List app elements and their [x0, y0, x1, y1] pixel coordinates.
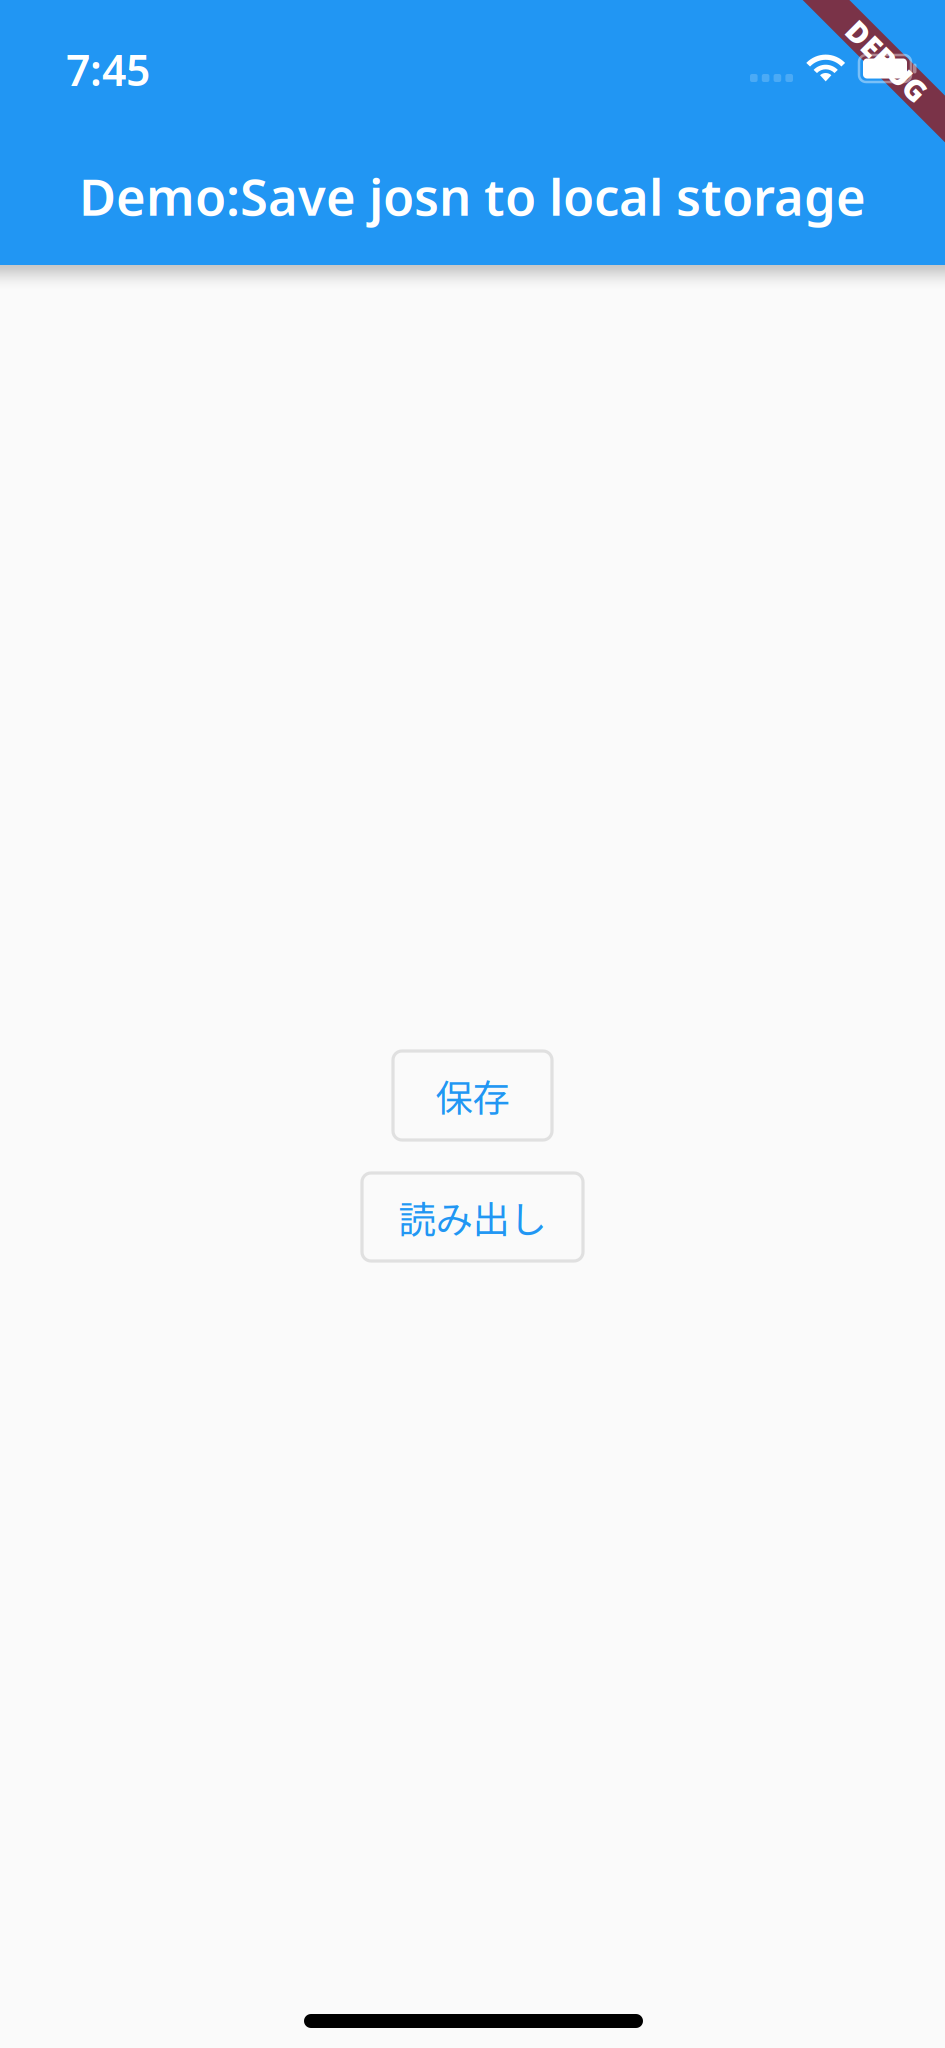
staticText: Demo:Save josn to local storage	[79, 162, 866, 230]
staticText: 7:45	[66, 41, 150, 98]
staticText: 保存	[435, 1068, 509, 1123]
button[interactable]: 読み出し	[362, 1173, 583, 1261]
staticText: 読み出し	[398, 1190, 546, 1244]
staticText: DEBUG	[836, 41, 938, 80]
button[interactable]: 保存	[393, 1051, 552, 1140]
